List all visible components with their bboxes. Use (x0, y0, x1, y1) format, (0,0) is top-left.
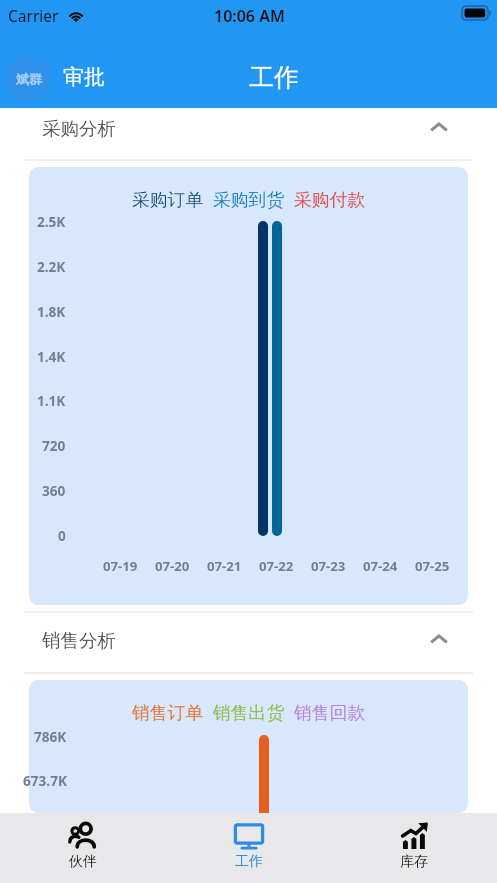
staticText: 2.2K (37, 257, 66, 273)
staticText: 斌群 (16, 71, 42, 87)
staticText: 07-21 (207, 557, 242, 575)
staticText: 1.4K (37, 347, 66, 363)
staticText: 库存 (400, 853, 428, 871)
button[interactable]: Work (166, 813, 331, 883)
staticText: 07-22 (259, 557, 294, 575)
staticText: 采购分析 (42, 117, 116, 140)
staticText: 采购订单 (132, 189, 204, 211)
staticText: 销售出货 (213, 702, 285, 724)
staticText: 10:06 AM (214, 5, 285, 27)
staticText: 销售分析 (42, 629, 116, 652)
staticText: 07-23 (311, 557, 346, 575)
staticText: 0 (58, 526, 66, 542)
staticText: 伙伴 (69, 853, 97, 871)
staticText: 审批 (63, 64, 105, 90)
staticText: 360 (42, 481, 66, 497)
staticText: 1.1K (37, 391, 66, 407)
staticText: 07-19 (103, 557, 138, 575)
staticText: Carrier (8, 5, 59, 26)
staticText: 720 (42, 436, 66, 452)
button[interactable]: Inventory (331, 813, 497, 883)
staticText: 采购到货 (213, 189, 285, 211)
staticText: 07-24 (363, 557, 398, 575)
staticText: 工作 (235, 853, 263, 871)
staticText: 07-20 (155, 557, 190, 575)
staticText: 07-25 (415, 557, 450, 575)
staticText: 786K (34, 727, 67, 746)
staticText: 工作 (249, 62, 299, 93)
staticText: 采购付款 (294, 189, 366, 211)
staticText: 销售回款 (294, 702, 366, 724)
staticText: 1.8K (37, 302, 66, 318)
button[interactable]: 采购分析 (0, 108, 497, 161)
staticText: 673.7K (23, 771, 67, 790)
staticText: 销售订单 (132, 702, 204, 724)
staticText: 2.5K (37, 212, 66, 228)
button[interactable]: Partners (0, 813, 166, 883)
button[interactable]: Profile (6, 56, 52, 102)
button[interactable]: 销售分析 (0, 611, 497, 674)
